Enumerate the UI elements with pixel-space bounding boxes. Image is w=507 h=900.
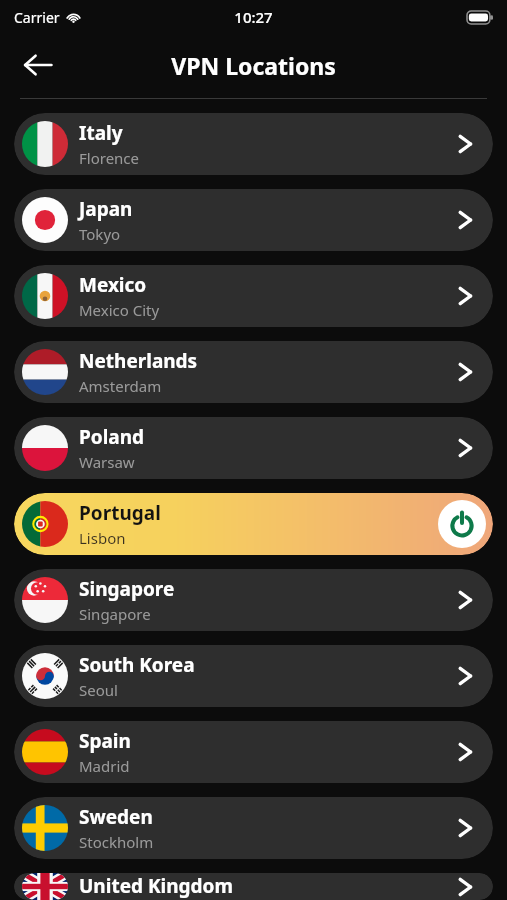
staticText: Netherlands: [79, 348, 198, 374]
button[interactable]: Open United Kingdom: [441, 873, 489, 900]
button[interactable]: Open Italy: [441, 118, 489, 170]
staticText: Mexico City: [79, 300, 160, 320]
button[interactable]: Open South Korea: [441, 650, 489, 702]
button[interactable]: Sweden: [14, 797, 493, 859]
button[interactable]: Singapore: [14, 569, 493, 631]
staticText: Spain: [79, 728, 131, 754]
button[interactable]: Poland: [14, 417, 493, 479]
staticText: Singapore: [79, 604, 151, 624]
button[interactable]: Italy: [14, 113, 493, 175]
button[interactable]: Japan: [14, 189, 493, 251]
button[interactable]: Disconnect VPN: [438, 500, 486, 548]
staticText: 10:27: [234, 7, 273, 27]
button[interactable]: Open Netherlands: [441, 346, 489, 398]
staticText: Amsterdam: [79, 376, 162, 396]
button[interactable]: Open Sweden: [441, 802, 489, 854]
button[interactable]: Open Mexico: [441, 270, 489, 322]
staticText: Mexico: [79, 272, 147, 298]
staticText: Poland: [79, 424, 145, 450]
button[interactable]: South Korea: [14, 645, 493, 707]
button[interactable]: Spain: [14, 721, 493, 783]
staticText: Tokyo: [79, 224, 121, 244]
button[interactable]: United Kingdom: [14, 873, 493, 900]
staticText: Warsaw: [79, 452, 135, 472]
button[interactable]: Open Poland: [441, 422, 489, 474]
staticText: Florence: [79, 148, 140, 168]
button[interactable]: Open Singapore: [441, 574, 489, 626]
staticText: Stockholm: [79, 832, 154, 852]
button[interactable]: Open Spain: [441, 726, 489, 778]
staticText: Sweden: [79, 804, 153, 830]
staticText: United Kingdom: [79, 873, 233, 899]
button[interactable]: Mexico: [14, 265, 493, 327]
staticText: Singapore: [79, 576, 175, 602]
staticText: Seoul: [79, 680, 118, 700]
button[interactable]: Netherlands: [14, 341, 493, 403]
staticText: Japan: [79, 196, 133, 222]
staticText: Carrier: [14, 8, 60, 27]
staticText: Madrid: [79, 756, 130, 776]
staticText: Portugal: [79, 500, 161, 526]
staticText: Lisbon: [79, 528, 126, 548]
staticText: South Korea: [79, 652, 195, 678]
staticText: Italy: [79, 120, 123, 146]
button[interactable]: Open Japan: [441, 194, 489, 246]
button[interactable]: Portugal: [14, 493, 493, 555]
button[interactable]: Back: [10, 37, 66, 93]
staticText: VPN Locations: [171, 50, 336, 81]
